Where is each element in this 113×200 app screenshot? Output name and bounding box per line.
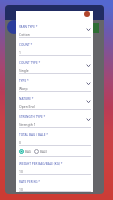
staticText: YARN TYPE * <box>19 25 38 29</box>
button[interactable]: TOTAL BAG / BALE * <box>16 128 93 146</box>
button[interactable]: COUNT * <box>16 38 93 56</box>
button[interactable]: COUNT TYPE * <box>16 56 93 74</box>
button[interactable]: STRENGTH TYPE * <box>16 110 93 128</box>
staticText: WEIGHT PER BAG/BALE (KG) * <box>19 162 63 166</box>
button[interactable]: BALE <box>34 149 48 154</box>
staticText: 1 <box>19 50 21 55</box>
staticText: Strength 1 <box>19 122 36 127</box>
staticText: 0 <box>19 140 21 145</box>
staticText: BALE <box>40 150 48 154</box>
staticText: 10 <box>19 169 23 174</box>
staticText: Warp <box>19 86 28 91</box>
staticText: RATE PER KG * <box>19 180 41 184</box>
staticText: TYPE * <box>19 79 29 83</box>
button[interactable]: Close <box>84 11 90 17</box>
staticText: Single <box>19 68 29 73</box>
staticText: Open End <box>19 104 35 109</box>
button[interactable]: YARN TYPE * <box>16 20 93 38</box>
button[interactable]: RATE PER KG * <box>16 175 93 192</box>
button[interactable]: TYPE * <box>16 74 93 92</box>
staticText: NATURE * <box>19 97 34 101</box>
button[interactable]: NATURE * <box>16 92 93 110</box>
staticText: COUNT * <box>19 43 33 47</box>
staticText: Cotton <box>19 32 30 37</box>
staticText: TOTAL BAG / BALE * <box>19 133 48 137</box>
staticText: BAG <box>25 150 31 154</box>
button[interactable]: BAG <box>19 149 31 154</box>
staticText: STRENGTH TYPE * <box>19 115 46 119</box>
staticText: 10 <box>19 187 23 192</box>
button[interactable]: WEIGHT PER BAG/BALE (KG) * <box>16 157 93 175</box>
staticText: COUNT TYPE * <box>19 61 41 65</box>
